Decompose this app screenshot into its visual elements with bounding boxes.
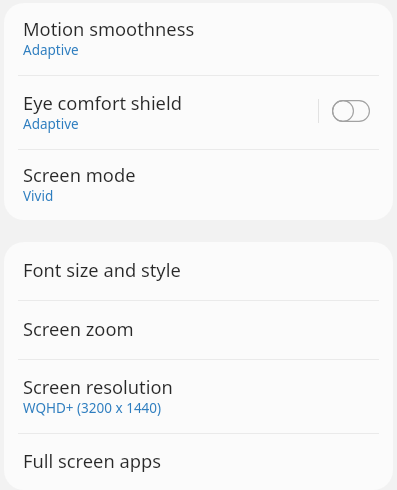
staticText: Font size and style bbox=[23, 257, 181, 282]
button[interactable]: Font size and style bbox=[4, 242, 393, 300]
button[interactable]: Screen mode bbox=[4, 150, 393, 220]
staticText: Screen resolution bbox=[23, 374, 173, 399]
staticText: Full screen apps bbox=[23, 448, 161, 473]
button[interactable]: Screen zoom bbox=[4, 301, 393, 359]
staticText: Screen mode bbox=[23, 162, 136, 187]
staticText: Adaptive bbox=[23, 44, 79, 58]
staticText: Motion smoothness bbox=[23, 16, 195, 41]
button[interactable]: Eye comfort shield bbox=[4, 76, 393, 149]
button[interactable]: Screen resolution bbox=[4, 360, 393, 433]
staticText: Screen zoom bbox=[23, 316, 134, 341]
staticText: Adaptive bbox=[23, 118, 79, 132]
staticText: Eye comfort shield bbox=[23, 90, 182, 115]
staticText: Vivid bbox=[23, 190, 54, 204]
button[interactable]: Full screen apps bbox=[4, 434, 393, 490]
button[interactable]: Motion smoothness bbox=[4, 3, 393, 75]
staticText: WQHD+ (3200 x 1440) bbox=[23, 402, 162, 416]
button[interactable]: Eye comfort shield toggle bbox=[332, 100, 370, 122]
